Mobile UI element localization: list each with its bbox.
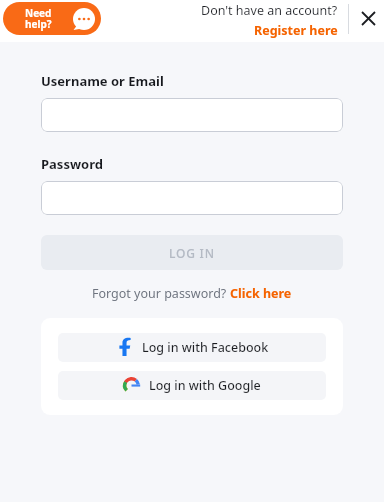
button[interactable]: Don't have an account? [186, 2, 338, 39]
button[interactable] [41, 98, 343, 132]
staticText: Need help? [25, 6, 52, 31]
button[interactable]: Need help? [3, 2, 101, 35]
staticText: LOG IN [169, 245, 215, 261]
button[interactable]: LOG IN [41, 235, 343, 270]
staticText: Log in with Google [149, 377, 261, 394]
button[interactable]: Forgot your password? [92, 285, 292, 302]
staticText: Forgot your password? [92, 285, 230, 302]
staticText: Don't have an account? [201, 2, 338, 19]
staticText: Register here [254, 22, 338, 39]
staticText: Log in with Facebook [142, 339, 269, 356]
button[interactable]: Close [354, 4, 382, 32]
staticText: Click here [230, 285, 292, 302]
button[interactable]: Log in with Google [58, 371, 326, 400]
staticText: Password [41, 155, 103, 173]
button[interactable]: Log in with Facebook [58, 333, 326, 362]
button[interactable] [41, 181, 343, 215]
staticText: Username or Email [41, 72, 164, 90]
